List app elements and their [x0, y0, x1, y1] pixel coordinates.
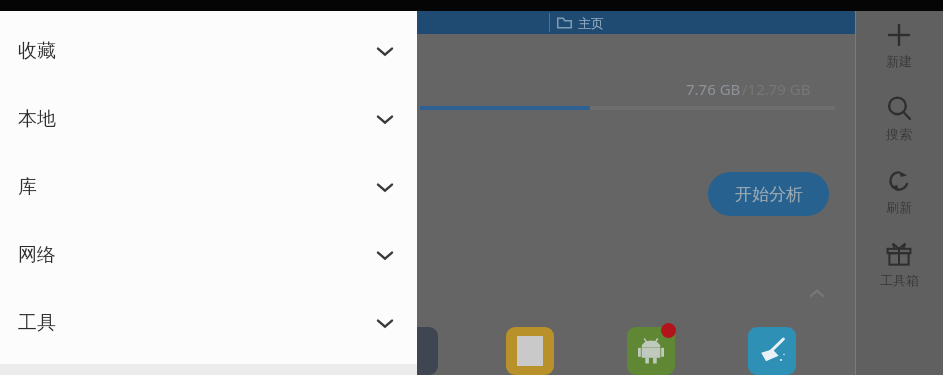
button[interactable]: 库 — [0, 153, 417, 221]
other: Toolbox — [886, 241, 912, 267]
staticText: 开始分析 — [735, 184, 803, 205]
staticText: 刷新 — [886, 199, 912, 215]
staticText: 工具箱 — [880, 272, 919, 288]
button[interactable]: Apps — [627, 327, 675, 375]
staticText: /12.79 GB — [742, 79, 811, 99]
button[interactable]: Search — [855, 93, 943, 144]
button[interactable]: 主页 — [557, 11, 604, 34]
button[interactable]: 工具 — [0, 289, 417, 357]
staticText: 收藏 — [18, 39, 56, 63]
staticText: 主页 — [578, 15, 604, 31]
other: New — [886, 22, 912, 48]
staticText: 搜索 — [886, 126, 912, 142]
staticText: 新建 — [886, 53, 912, 69]
button[interactable]: 收藏 — [0, 17, 417, 85]
button[interactable]: 网络 — [0, 221, 417, 289]
staticText: 库 — [18, 175, 37, 199]
button[interactable]: Refresh — [855, 166, 943, 217]
button[interactable]: Cleaner — [748, 327, 796, 375]
button[interactable]: New — [855, 20, 943, 71]
other: Search — [886, 95, 912, 121]
button[interactable]: 本地 — [0, 85, 417, 153]
staticText: 本地 — [18, 107, 56, 131]
button[interactable]: Collapse — [803, 280, 831, 308]
button[interactable]: Notes — [506, 327, 554, 375]
button[interactable]: Toolbox — [855, 239, 943, 290]
other: Refresh — [886, 168, 912, 194]
button[interactable]: 开始分析 — [708, 172, 829, 216]
staticText: 工具 — [18, 311, 56, 335]
staticText: 7.76 GB — [686, 79, 741, 99]
button[interactable]: App — [413, 327, 438, 375]
staticText: 网络 — [18, 243, 56, 267]
